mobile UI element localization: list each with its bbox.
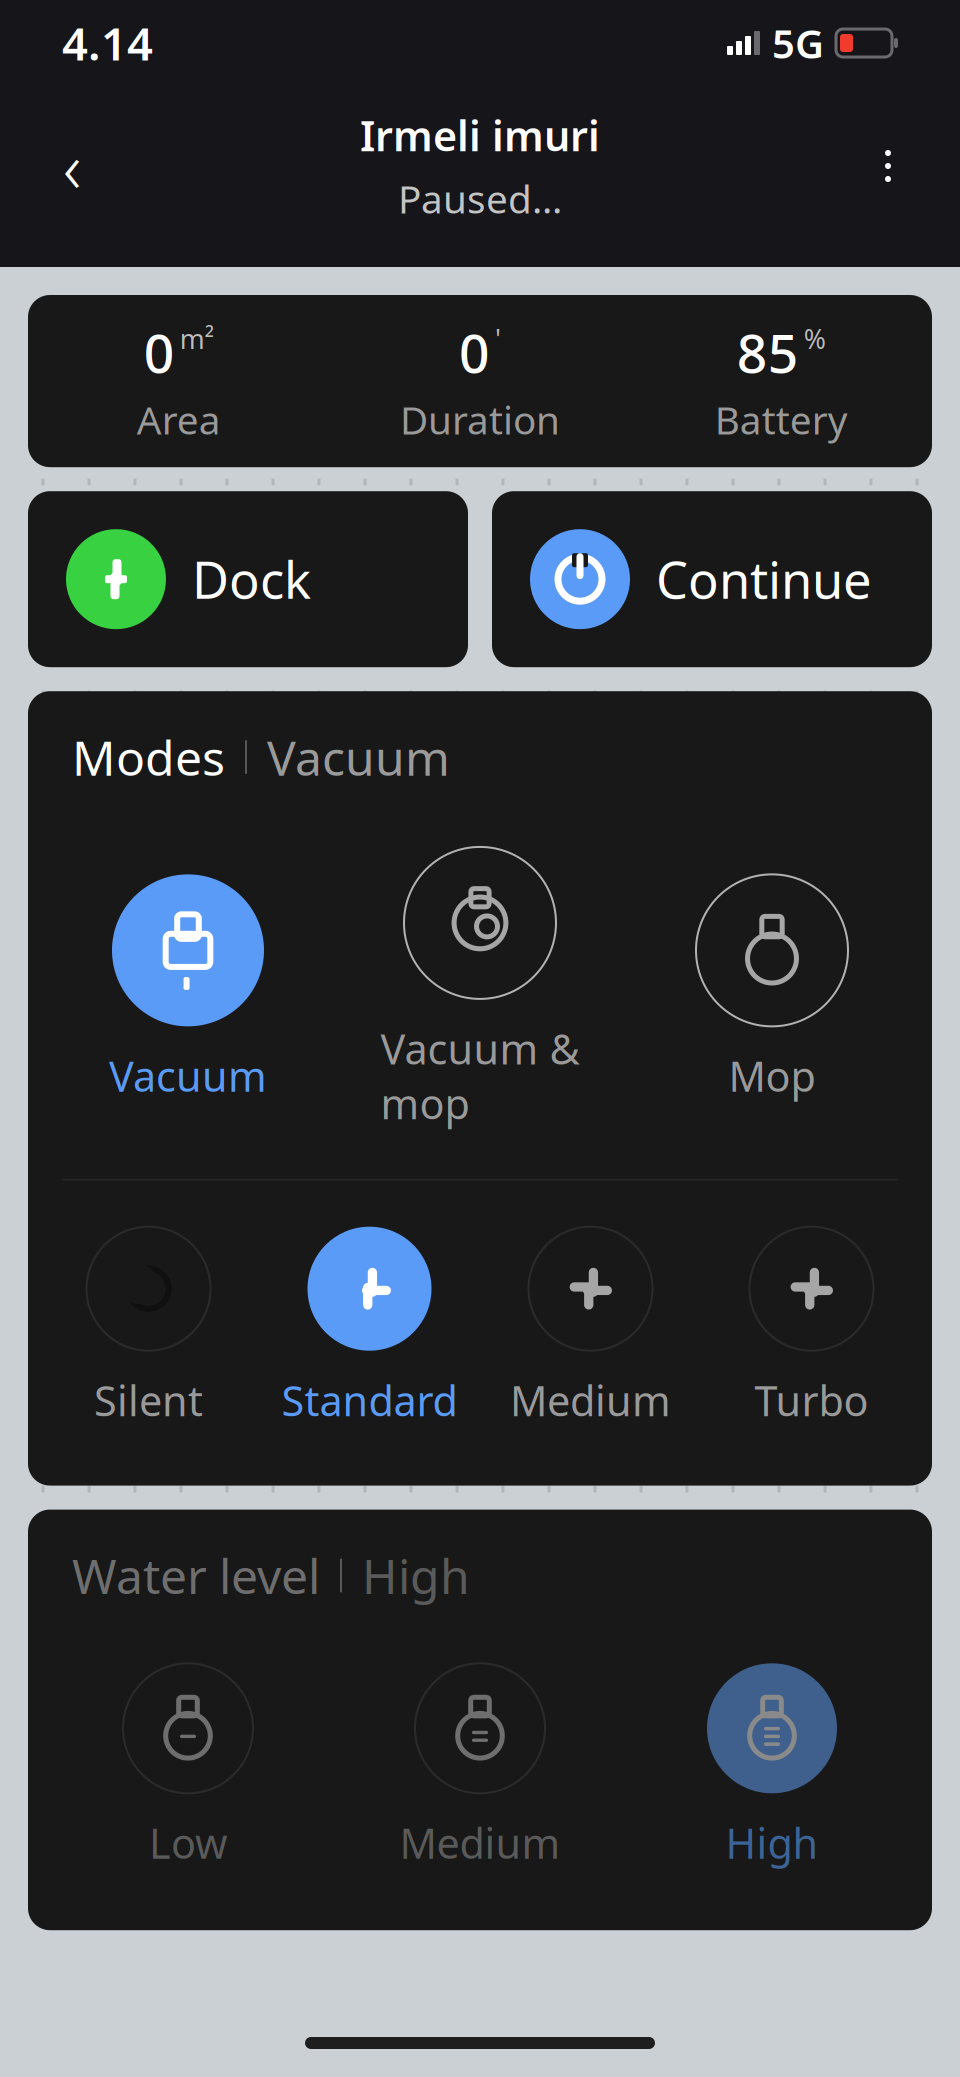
staticText: 4.14 [62,13,153,73]
button[interactable]: More options [846,124,930,208]
staticText: % [804,321,826,356]
staticText: High [362,1544,470,1607]
button[interactable]: Vacuum [42,874,334,1103]
staticText: High [725,1815,818,1870]
staticText: Modes [72,725,225,789]
button[interactable]: Medium [480,1227,701,1428]
button[interactable]: Vacuum & mop [334,847,626,1131]
staticText: m² [180,321,214,356]
staticText: Silent [94,1373,203,1428]
staticText: Vacuum [267,725,450,789]
staticText: Area [137,394,221,445]
staticText: Continue [656,545,872,613]
staticText: Vacuum & mop [380,1021,579,1131]
staticText: 85 [737,317,799,388]
button[interactable]: Mop [626,874,918,1103]
staticText: Turbo [754,1373,868,1428]
staticText: ' [495,321,501,356]
button[interactable]: High [626,1663,918,1870]
button[interactable]: Low [42,1663,334,1870]
staticText: Standard [281,1373,457,1428]
button[interactable]: Back [30,124,114,208]
button[interactable]: Continue [492,491,932,667]
staticText: ‹ [63,120,81,212]
button[interactable]: ⚡ [28,491,468,667]
staticText: Water level [72,1544,320,1607]
button[interactable]: Standard [259,1227,480,1428]
staticText: Dock [192,545,311,613]
staticText: Mop [728,1048,815,1103]
staticText: Duration [400,394,560,445]
staticText: Medium [510,1373,671,1428]
staticText: 5G [772,16,824,69]
button[interactable]: Turbo [701,1227,922,1428]
staticText: Medium [399,1815,560,1870]
staticText: Vacuum [109,1048,267,1103]
staticText: 0 [459,317,490,388]
staticText: Paused... [398,173,562,224]
staticText: 0 [144,317,175,388]
staticText: Battery [715,394,848,445]
staticText: Irmeli imuri [360,108,600,163]
staticText: Low [149,1815,227,1870]
button[interactable]: Silent [38,1227,259,1428]
button[interactable]: Medium [334,1663,626,1870]
